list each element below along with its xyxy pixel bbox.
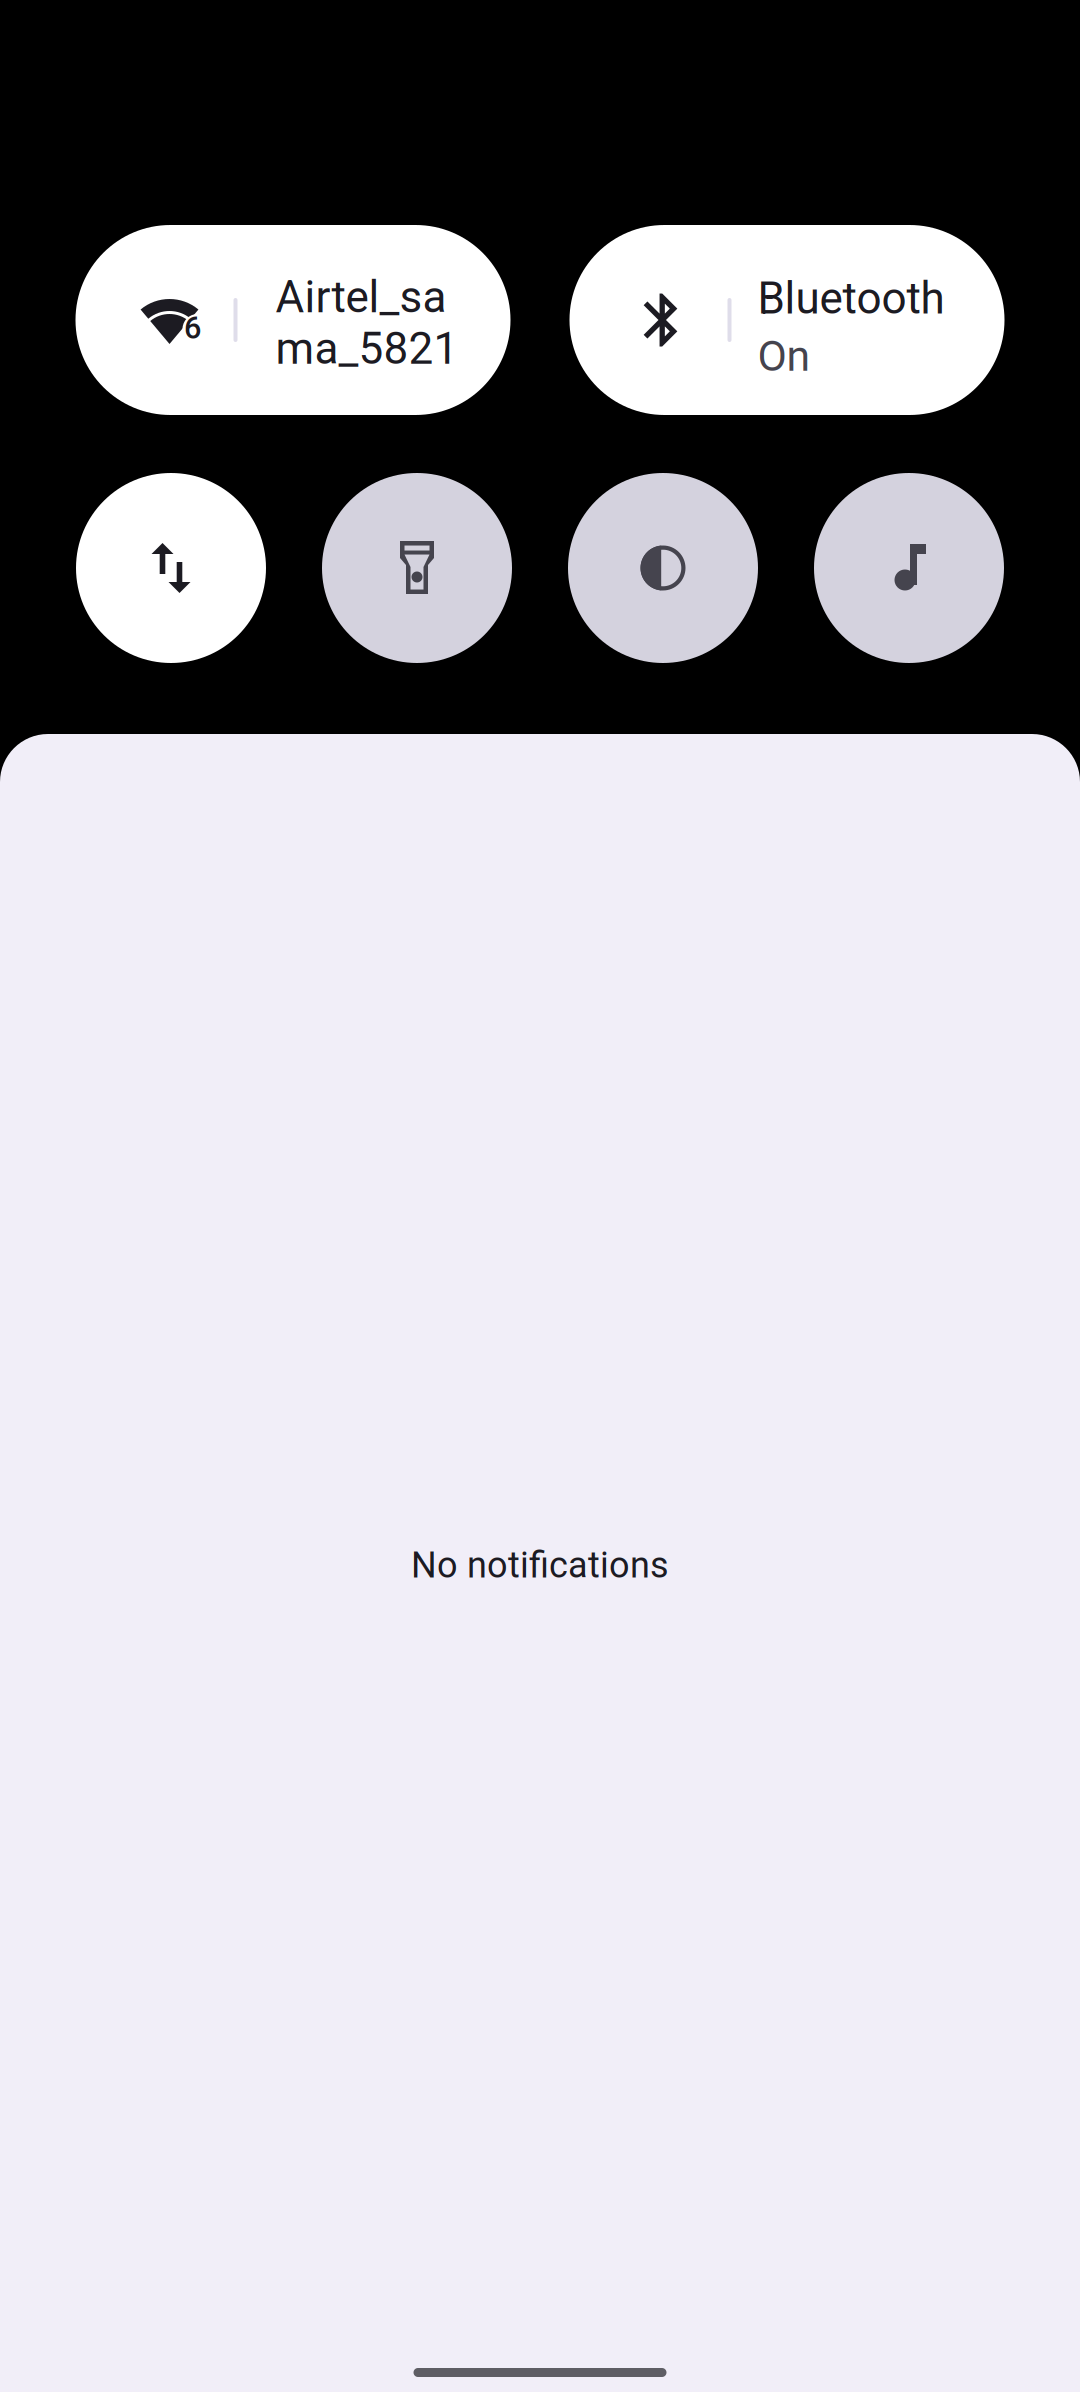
button[interactable]: Mobile data xyxy=(76,473,266,663)
staticText: Airtel_sa xyxy=(275,271,446,323)
button[interactable]: Media output xyxy=(814,473,1004,663)
button[interactable]: Internet, Airtel_sama_5821 xyxy=(75,225,510,415)
button[interactable]: Bluetooth, On xyxy=(569,225,1004,415)
button[interactable]: Flashlight xyxy=(322,473,512,663)
staticText: ma_5821 xyxy=(275,323,458,375)
staticText: On xyxy=(757,331,810,381)
staticText: Bluetooth xyxy=(757,273,944,324)
staticText: 6 xyxy=(184,310,201,346)
staticText: No notifications xyxy=(411,1544,669,1586)
button[interactable]: Dark theme xyxy=(568,473,758,663)
